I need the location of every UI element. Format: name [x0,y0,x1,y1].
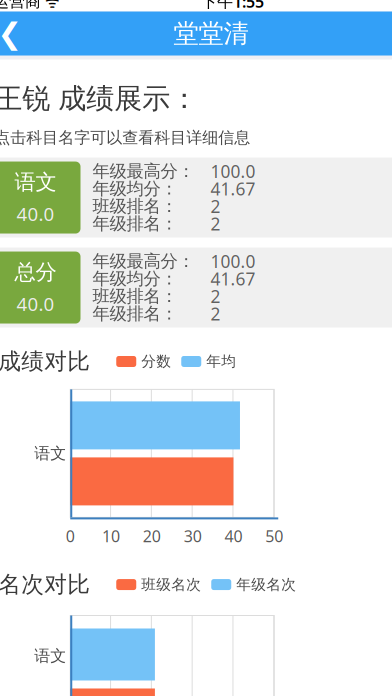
staticText: 班级排名： [92,286,177,307]
staticText: 年级最高分： [92,251,194,272]
staticText: 100.0 [210,160,255,183]
staticText: 2 [210,195,220,218]
staticText: 年级均分： [92,178,177,199]
staticText: 40.0 [16,291,54,316]
staticText: 班级名次 [141,576,201,594]
button[interactable]: 语文 [0,162,80,234]
staticText: 下午1:55 [201,0,264,12]
staticText: 分数 [141,352,171,370]
staticText: 名次对比 [0,571,90,598]
staticText: 40 [224,525,242,547]
staticText: 2 [210,212,220,235]
staticText: 点击科目名字可以查看科目详细信息 [0,128,250,148]
staticText: 年级排名： [92,303,177,324]
staticText: 语文 [34,646,66,666]
staticText: 年均 [206,352,236,370]
staticText: 年级均分： [92,268,177,289]
staticText: 10 [102,525,120,547]
staticText: 堂堂清 [173,18,248,49]
button[interactable]: Back [0,11,35,55]
staticText: 41.67 [210,177,255,200]
staticText: 年级最高分： [92,161,194,182]
staticText: 100.0 [210,250,255,273]
staticText: 40.0 [16,201,54,226]
staticText: 王锐 成绩展示： [0,81,198,116]
staticText: 年级排名： [92,213,177,234]
staticText: 0 [66,525,75,547]
staticText: 30 [184,525,202,547]
staticText: 语文 [34,444,66,463]
staticText: 41.67 [210,267,255,290]
staticText: 50 [265,525,283,547]
staticText: 总分 [14,259,56,285]
staticText: ❮ [0,17,22,50]
staticText: 年级名次 [236,576,296,594]
staticText: 运营商 [0,0,41,11]
staticText: 2 [210,302,220,325]
button[interactable]: 总分 [0,252,80,324]
staticText: 班级排名： [92,196,177,217]
staticText: 20 [143,525,161,547]
staticText: ᯤ [41,0,60,12]
staticText: 语文 [14,169,56,195]
staticText: 2 [210,285,220,308]
staticText: 成绩对比 [0,348,90,375]
